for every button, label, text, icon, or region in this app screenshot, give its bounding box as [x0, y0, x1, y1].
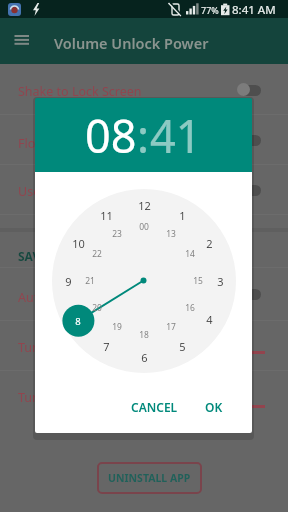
staticText: 08 — [85, 105, 137, 166]
button[interactable]: Turn Off Screen Delay — [0, 321, 288, 371]
button[interactable]: OK — [196, 393, 232, 421]
button[interactable] — [239, 135, 261, 146]
staticText: 21 — [85, 275, 95, 287]
button[interactable]: Turn Off Animation — [0, 371, 288, 421]
button[interactable]: Use Proximity Sensor — [0, 165, 288, 215]
staticText: 8 — [75, 315, 81, 328]
staticText: 2 — [206, 236, 213, 251]
staticText: Turn Off Animation — [18, 389, 131, 406]
staticText: 5 — [179, 339, 186, 354]
staticText: 23 — [112, 228, 122, 240]
button[interactable]: CANCEL — [128, 393, 180, 421]
staticText: 10 — [72, 236, 85, 251]
staticText: 22 — [92, 248, 102, 260]
staticText: 16 — [185, 302, 195, 314]
button[interactable]: Floating Lock Button — [0, 115, 288, 165]
staticText: 18 — [139, 329, 149, 341]
staticText: 8:41 AM — [232, 2, 276, 18]
staticText: 7 — [103, 339, 110, 354]
staticText: Volume Unlock Power — [54, 33, 209, 53]
staticText: 77% — [201, 4, 219, 16]
staticText: 41 — [150, 105, 202, 166]
staticText: Floating Lock Button — [18, 135, 139, 152]
staticText: 00 — [139, 221, 149, 233]
staticText: 4 — [206, 312, 213, 327]
staticText: Shake to Lock Screen — [18, 83, 142, 100]
staticText: 20 — [92, 302, 102, 314]
staticText: OK — [205, 399, 223, 415]
button[interactable]: Shake to Lock Screen — [0, 65, 288, 115]
staticText: Use Proximity Sensor — [18, 183, 143, 200]
staticText: 12 — [138, 198, 151, 213]
staticText: 17 — [166, 321, 176, 333]
staticText: : — [137, 105, 150, 166]
button[interactable]: 8 — [0, 0, 26, 16]
button[interactable]: UNINSTALL APP — [97, 462, 202, 494]
button[interactable] — [13, 33, 31, 47]
button[interactable] — [239, 85, 261, 96]
staticText: SAVE POWER — [18, 248, 94, 264]
staticText: CANCEL — [131, 399, 178, 415]
staticText: 13 — [166, 228, 176, 240]
staticText: 11 — [100, 208, 113, 223]
staticText: 15 — [193, 275, 203, 287]
staticText: 6 — [141, 350, 148, 365]
staticText: 9 — [65, 274, 72, 289]
staticText: Auto Turn Off Screen — [18, 289, 141, 306]
staticText: UNINSTALL APP — [108, 471, 191, 485]
staticText: 19 — [112, 321, 122, 333]
staticText: 3 — [217, 274, 224, 289]
staticText: 14 — [185, 248, 195, 260]
staticText: Turn Off Screen Delay — [18, 339, 146, 356]
button[interactable]: Auto Turn Off Screen — [0, 271, 288, 321]
button[interactable] — [239, 289, 261, 300]
button[interactable] — [239, 185, 261, 196]
staticText: 1 — [179, 208, 186, 223]
